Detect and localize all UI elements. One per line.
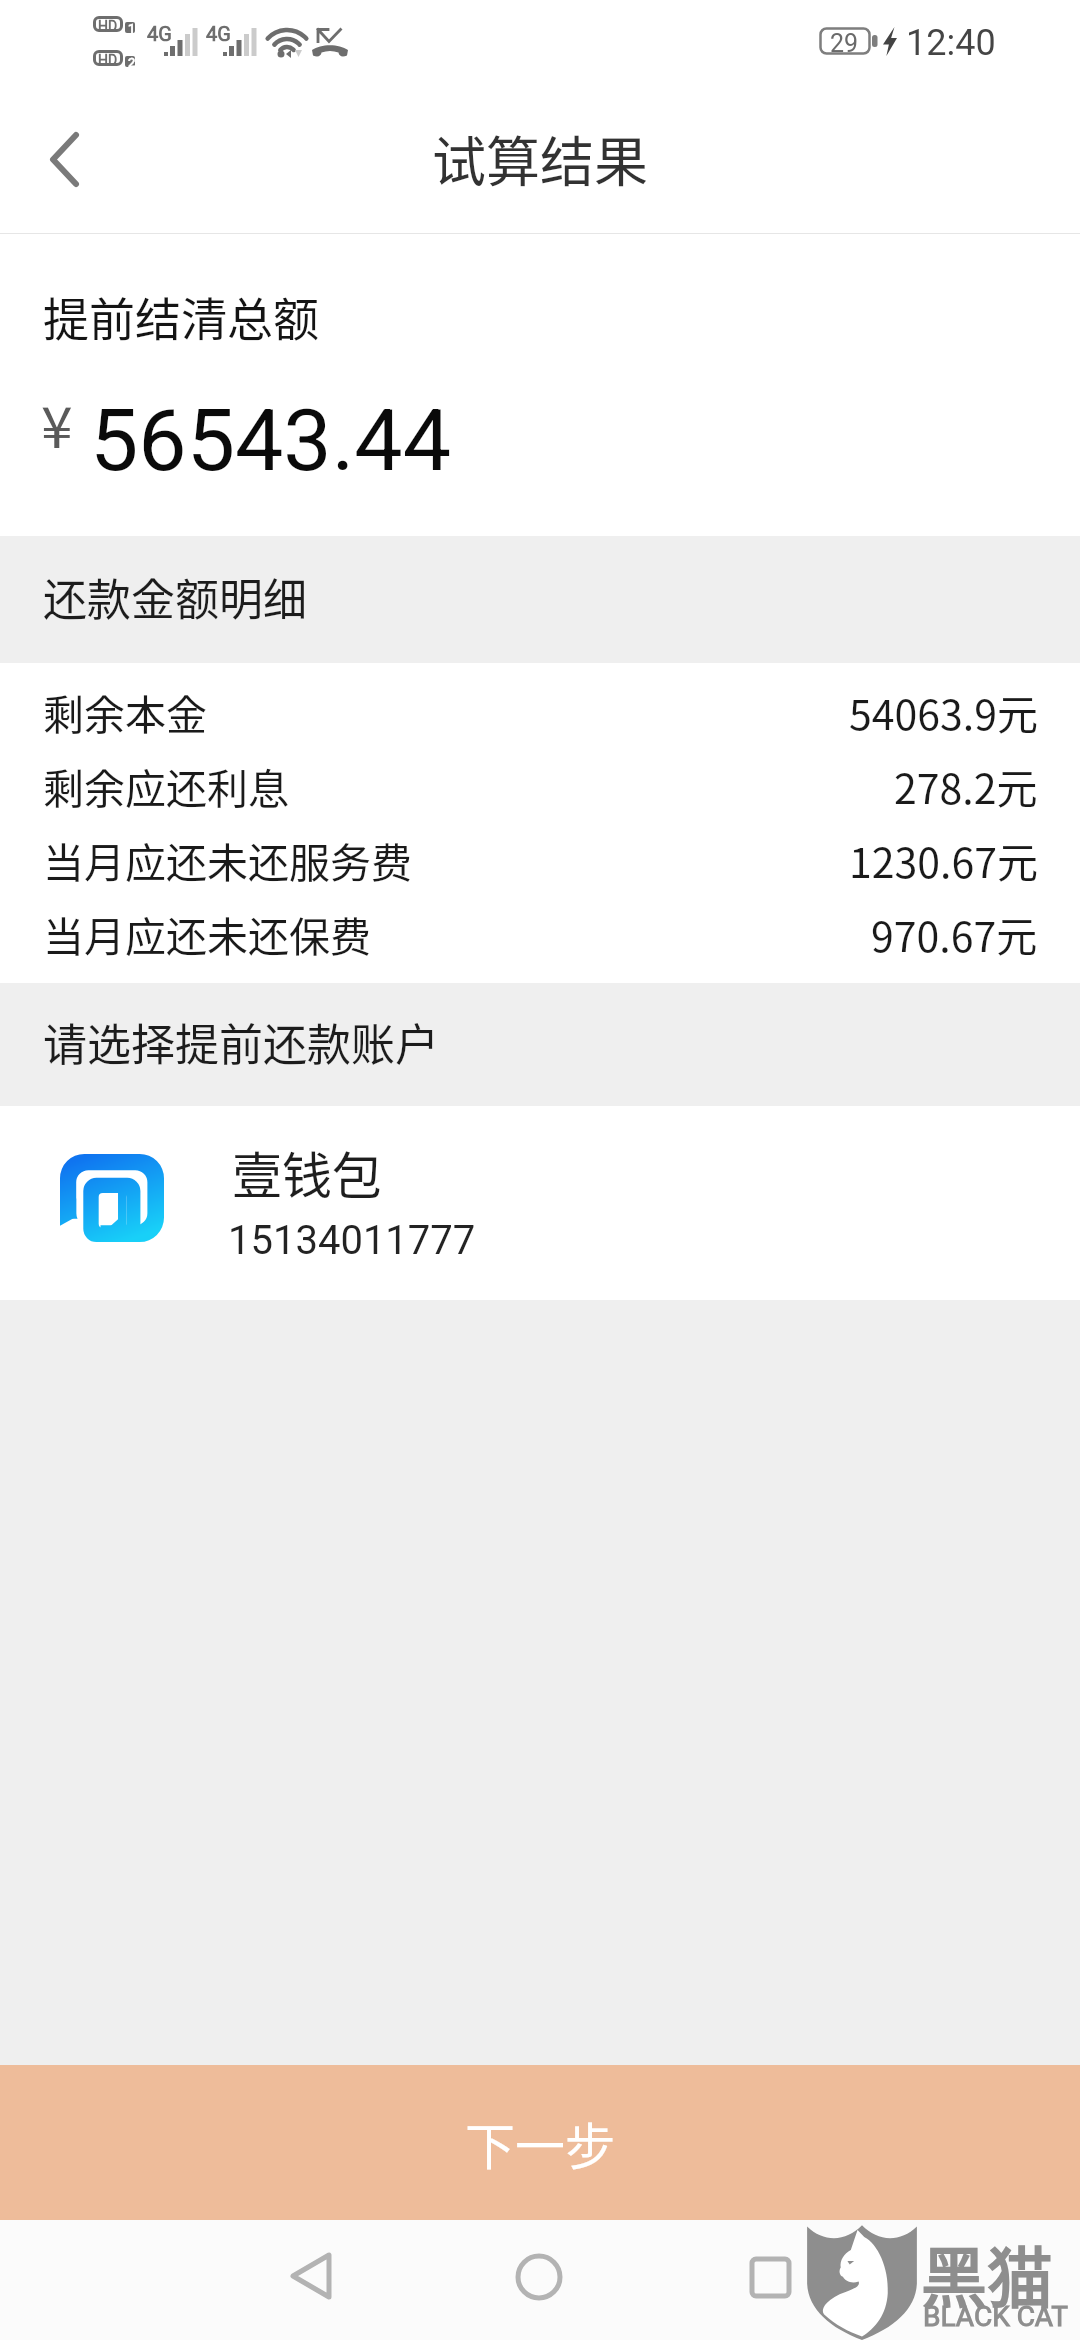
staticText: 56543.44	[90, 390, 452, 491]
staticText: BLACK CAT	[923, 2300, 1069, 2333]
staticText: HD	[98, 52, 118, 68]
staticText: 15134011777	[228, 1217, 476, 1264]
staticText: 1230.67元	[849, 830, 1038, 889]
staticText: 剩余本金	[43, 682, 207, 741]
staticText: 还款金额明细	[43, 565, 307, 629]
staticText: 提前结清总额	[43, 283, 319, 350]
staticText: 当月应还未还服务费	[43, 830, 412, 889]
button[interactable]: 返回	[247, 2220, 377, 2340]
staticText: HD	[98, 18, 118, 34]
staticText: 12:40	[906, 22, 996, 64]
button[interactable]: 壹钱包	[0, 1106, 1080, 1300]
staticText: 黑猫	[921, 2225, 1053, 2321]
button[interactable]: 下一步	[0, 2065, 1080, 2220]
staticText: 2	[128, 55, 136, 70]
staticText: 278.2元	[894, 756, 1038, 815]
staticText: 剩余应还利息	[43, 756, 289, 815]
button[interactable]: 主页	[474, 2220, 604, 2340]
staticText: ¥	[41, 382, 73, 465]
staticText: 29	[830, 29, 859, 58]
button[interactable]: 最近任务	[704, 2220, 834, 2340]
staticText: 970.67元	[871, 904, 1038, 963]
staticText: 请选择提前还款账户	[43, 1010, 439, 1074]
staticText: 4G	[147, 22, 172, 45]
staticText: 下一步	[465, 2107, 615, 2179]
staticText: 当月应还未还保费	[43, 904, 371, 963]
staticText: 54063.9元	[849, 682, 1038, 741]
staticText: 试算结果	[432, 119, 648, 197]
staticText: 4G	[206, 22, 231, 45]
staticText: 壹钱包	[232, 1136, 382, 1208]
button[interactable]: 返回	[0, 100, 130, 234]
staticText: 1	[128, 21, 136, 36]
